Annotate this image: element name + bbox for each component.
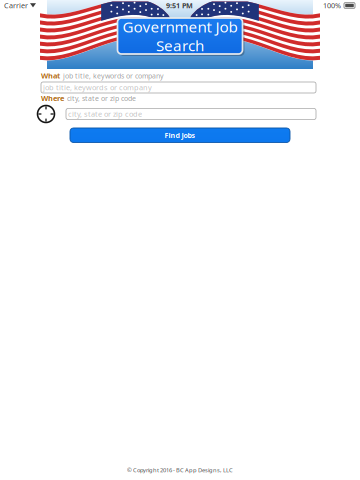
staticText: © Copyright 2016 - BC App Designs, LLC	[127, 466, 233, 474]
button[interactable]: Use current location	[35, 103, 57, 125]
button[interactable]: Find Jobs	[0, 128, 360, 142]
staticText: 100%	[323, 1, 341, 10]
staticText: Where	[41, 93, 64, 103]
staticText: 9:51 PM	[166, 1, 193, 10]
staticText: Search	[156, 35, 204, 56]
staticText: Find Jobs	[164, 130, 195, 140]
staticText: Government Job	[122, 16, 237, 37]
staticText: city, state or zip code	[68, 109, 142, 119]
staticText: city, state or zip code	[67, 94, 136, 103]
staticText: job title, keywords or company	[43, 82, 152, 92]
staticText: job title, keywords or company	[63, 71, 164, 80]
staticText: What	[41, 70, 60, 81]
staticText: Carrier	[4, 1, 28, 10]
